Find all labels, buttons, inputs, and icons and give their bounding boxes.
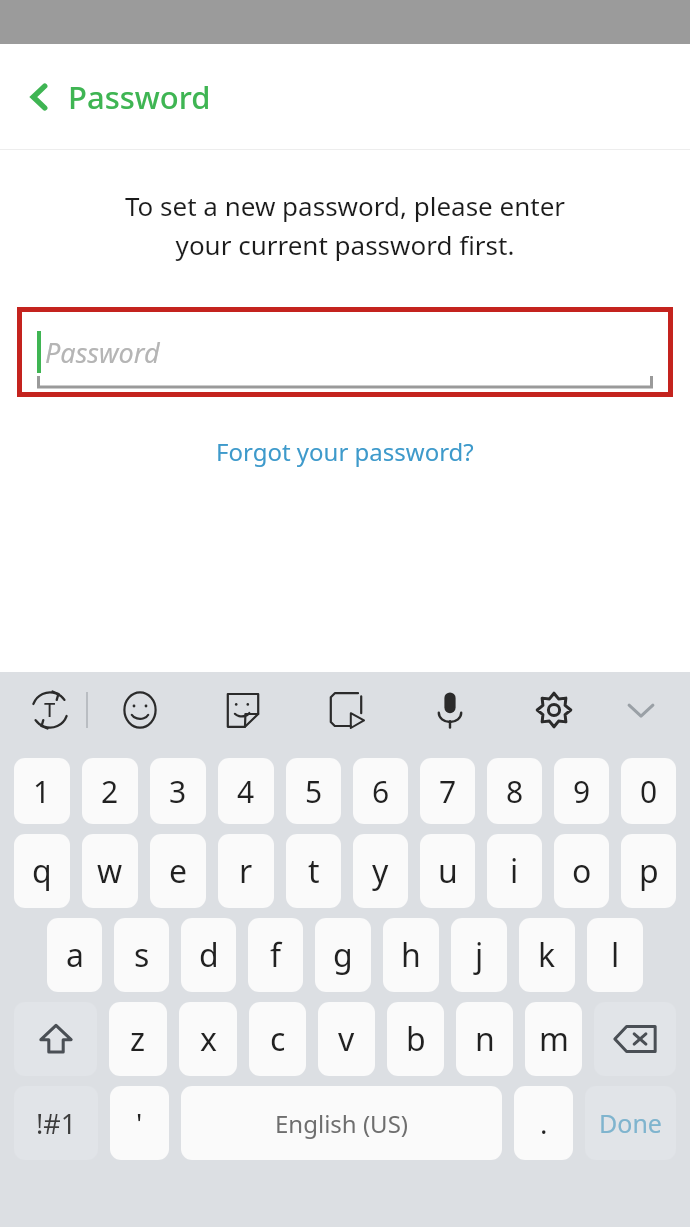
button[interactable]: 2 (82, 758, 138, 824)
staticText: q (32, 849, 52, 893)
staticText: 4 (237, 771, 255, 812)
button[interactable]: v (318, 1002, 375, 1076)
staticText: w (97, 849, 123, 893)
staticText: b (406, 1017, 426, 1061)
button[interactable]: w (82, 834, 138, 908)
staticText: o (572, 849, 592, 893)
staticText: 7 (439, 771, 457, 812)
staticText: 0 (640, 771, 658, 812)
staticText: 8 (506, 771, 524, 812)
staticText: c (270, 1017, 286, 1061)
staticText: r (239, 849, 253, 893)
button[interactable]: 5 (286, 758, 341, 824)
staticText: g (333, 933, 353, 977)
staticText: x (200, 1017, 217, 1061)
button[interactable]: 4 (218, 758, 274, 824)
button[interactable]: b (387, 1002, 444, 1076)
button[interactable]: Settings (502, 672, 606, 747)
staticText: m (539, 1017, 569, 1061)
staticText: p (639, 849, 659, 893)
staticText: 1 (33, 771, 51, 812)
button[interactable]: m (525, 1002, 582, 1076)
staticText: f (270, 933, 282, 977)
button[interactable]: 8 (487, 758, 542, 824)
button[interactable]: !#1 (14, 1086, 98, 1160)
button[interactable]: s (114, 918, 169, 992)
button[interactable]: Voice input (398, 672, 502, 747)
button[interactable]: k (519, 918, 575, 992)
staticText: 6 (372, 771, 390, 812)
button[interactable]: Translate (14, 672, 86, 747)
staticText: a (66, 933, 84, 977)
button[interactable]: c (249, 1002, 306, 1076)
staticText: n (475, 1017, 495, 1061)
staticText: u (438, 849, 458, 893)
staticText: h (401, 933, 421, 977)
other: Back (26, 80, 52, 114)
staticText: s (134, 933, 150, 977)
staticText: v (338, 1017, 355, 1061)
button[interactable]: e (150, 834, 206, 908)
button[interactable]: 7 (420, 758, 475, 824)
staticText: ' (136, 1104, 143, 1142)
button[interactable]: Done (585, 1086, 676, 1160)
staticText: l (611, 933, 620, 977)
button[interactable]: Hide keyboard (606, 672, 676, 747)
button[interactable]: a (47, 918, 102, 992)
button[interactable]: 3 (150, 758, 206, 824)
staticText: . (540, 1104, 548, 1142)
button[interactable]: Back (20, 70, 217, 124)
button[interactable]: GIF (294, 672, 398, 747)
staticText: 2 (101, 771, 119, 812)
staticText: Password (45, 334, 160, 371)
button[interactable]: ' (110, 1086, 169, 1160)
button[interactable]: u (420, 834, 475, 908)
staticText: j (475, 933, 484, 977)
button[interactable]: Stickers (191, 672, 294, 747)
button[interactable]: i (487, 834, 542, 908)
staticText: 9 (573, 771, 591, 812)
button[interactable]: 1 (14, 758, 70, 824)
staticText: 3 (169, 771, 187, 812)
button[interactable]: z (109, 1002, 167, 1076)
button[interactable]: q (14, 834, 70, 908)
button[interactable]: g (315, 918, 371, 992)
staticText: z (130, 1017, 146, 1061)
button[interactable]: Password (37, 315, 653, 389)
button[interactable]: Emoji (88, 672, 191, 747)
button[interactable]: Forgot your password? (208, 427, 482, 476)
button[interactable]: English (US) (181, 1086, 502, 1160)
button[interactable]: l (587, 918, 643, 992)
button[interactable]: d (181, 918, 236, 992)
staticText: d (199, 933, 219, 977)
button[interactable]: . (514, 1086, 573, 1160)
staticText: T (44, 696, 56, 723)
staticText: y (372, 849, 389, 893)
staticText: English (US) (275, 1107, 409, 1140)
button[interactable]: h (383, 918, 439, 992)
button[interactable]: 0 (621, 758, 676, 824)
button[interactable]: Shift (14, 1002, 97, 1076)
button[interactable]: r (218, 834, 274, 908)
button[interactable]: x (179, 1002, 237, 1076)
button[interactable]: j (451, 918, 507, 992)
button[interactable]: n (456, 1002, 513, 1076)
staticText: e (169, 849, 188, 893)
staticText: t (308, 849, 320, 893)
staticText: Done (599, 1106, 662, 1140)
button[interactable]: 9 (554, 758, 609, 824)
staticText: !#1 (36, 1105, 77, 1142)
button[interactable]: 6 (353, 758, 408, 824)
staticText: i (510, 849, 519, 893)
button[interactable]: y (353, 834, 408, 908)
button[interactable]: p (621, 834, 676, 908)
staticText: Password (68, 76, 211, 118)
button[interactable]: Backspace (594, 1002, 676, 1076)
button[interactable]: o (554, 834, 609, 908)
staticText: 5 (305, 771, 323, 812)
button[interactable]: t (286, 834, 341, 908)
staticText: k (538, 933, 556, 977)
staticText: To set a new password, please enter your… (24, 188, 666, 263)
button[interactable]: f (248, 918, 303, 992)
